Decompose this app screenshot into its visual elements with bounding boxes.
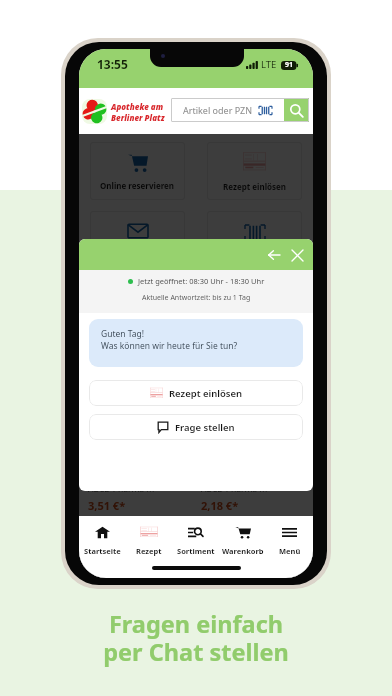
button[interactable]: ABCD Pharma m	[201, 483, 304, 524]
staticText: 91	[285, 60, 294, 70]
staticText: ABCD Pharma m	[88, 483, 155, 495]
staticText: ABCD Pharma m	[201, 483, 268, 495]
staticText: iPhone is a trademark of Apple Inc.	[78, 242, 86, 341]
button[interactable]: Artikel oder PZN	[171, 98, 284, 122]
staticText: Grundpreis: 351,00 €/l	[88, 515, 156, 524]
button[interactable]: ABCD Pharma m	[88, 483, 191, 524]
staticText: Sortiment	[177, 546, 215, 556]
button[interactable]: Schließen	[287, 245, 307, 265]
staticText: Apotheke am	[111, 101, 164, 112]
button[interactable]: Warenkorb	[219, 516, 266, 557]
button[interactable]: Kontakt	[90, 211, 185, 269]
staticText: Startseite	[84, 546, 121, 556]
staticText: Grundpreis: 218,00 €/l	[201, 515, 269, 524]
button[interactable]: PZN scannen	[207, 211, 302, 269]
staticText: Berliner Platz	[111, 112, 165, 123]
button[interactable]: Sortiment	[172, 516, 219, 557]
button[interactable]: Apotheke am	[82, 99, 165, 124]
button[interactable]: Frage stellen	[89, 414, 303, 440]
staticText: Frage stellen	[175, 421, 235, 434]
staticText: PZN scannen	[229, 248, 281, 259]
button[interactable]: Menü	[266, 516, 313, 557]
staticText: Rezept einlösen	[169, 387, 243, 400]
button[interactable]: Barcode scannen	[258, 103, 272, 117]
staticText: LTE	[261, 58, 277, 71]
staticText: Aktuelle Antwortzeit: bis zu 1 Tag	[142, 293, 251, 303]
button[interactable]: Zurück	[264, 245, 284, 265]
staticText: Rezept	[136, 546, 162, 556]
staticText: Artikel oder PZN	[183, 104, 253, 116]
staticText: Was können wir heute für Sie tun?	[101, 340, 238, 352]
staticText: 13:55	[97, 56, 128, 72]
staticText: Fragen einfach per Chat stellen	[0, 608, 392, 668]
button[interactable]: Online reservieren	[90, 142, 185, 200]
button[interactable]: Suchen	[284, 98, 309, 122]
button[interactable]: Rezept einlösen	[89, 380, 303, 406]
button[interactable]: Rezept	[125, 516, 172, 557]
button[interactable]: Startseite	[79, 516, 125, 557]
staticText: Rezept einlösen	[223, 181, 287, 192]
staticText: Jetzt geöffnet: 08:30 Uhr - 18:30 Uhr	[138, 276, 265, 286]
staticText: Menü	[279, 546, 301, 556]
button[interactable]: Rezept einlösen	[207, 142, 302, 200]
staticText: Warenkorb	[222, 546, 264, 556]
staticText: 3,51 €*	[88, 498, 126, 513]
staticText: 2,18 €*	[201, 498, 239, 513]
staticText: Online reservieren	[100, 180, 175, 191]
staticText: Guten Tag!	[101, 328, 145, 340]
